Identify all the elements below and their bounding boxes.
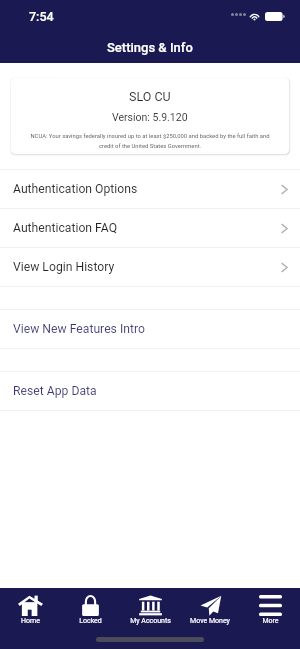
button[interactable]: Reset App Data	[0, 372, 300, 410]
button[interactable]: Move Money	[180, 595, 240, 625]
staticText: View Login History	[13, 260, 115, 274]
staticText: Settings & Info	[107, 40, 193, 55]
staticText: My Accounts	[130, 617, 171, 625]
staticText: NCUA: Your savings federally insured up …	[29, 133, 271, 149]
button[interactable]: View New Features Intro	[0, 310, 300, 348]
button[interactable]: My Accounts	[120, 595, 180, 625]
staticText: 7:54	[29, 9, 54, 24]
staticText: Move Money	[190, 617, 230, 625]
staticText: View New Features Intro	[13, 322, 145, 336]
staticText: Reset App Data	[13, 384, 97, 398]
button[interactable]: Home	[0, 595, 60, 625]
staticText: Authentication Options	[13, 182, 138, 196]
button[interactable]: More	[240, 595, 300, 625]
staticText: Authentication FAQ	[13, 221, 118, 235]
button[interactable]: View Login History	[0, 248, 300, 286]
staticText: Locked	[79, 617, 102, 625]
button[interactable]: Authentication Options	[0, 170, 300, 208]
staticText: Version: 5.9.120	[112, 111, 188, 123]
staticText: More	[262, 617, 279, 625]
staticText: Home	[21, 617, 40, 625]
staticText: SLO CU	[129, 89, 171, 104]
button[interactable]: Locked	[60, 595, 120, 625]
button[interactable]: Authentication FAQ	[0, 209, 300, 247]
